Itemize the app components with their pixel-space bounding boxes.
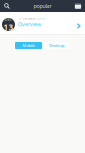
staticText: popular (33, 2, 51, 10)
staticText: 13 (3, 22, 13, 33)
staticText: Desktop (49, 43, 64, 48)
button[interactable]: Search (0, 0, 14, 12)
staticText: Overview (18, 20, 41, 28)
staticText: DEC (4, 17, 12, 22)
button[interactable]: Desktop (43, 42, 70, 49)
staticText: Mobile (22, 43, 34, 48)
staticText: 13 DECEMBER 2014 (18, 17, 45, 20)
button[interactable]: Calendar (71, 0, 85, 12)
button[interactable]: DEC (0, 12, 85, 34)
button[interactable]: Mobile (15, 42, 42, 49)
